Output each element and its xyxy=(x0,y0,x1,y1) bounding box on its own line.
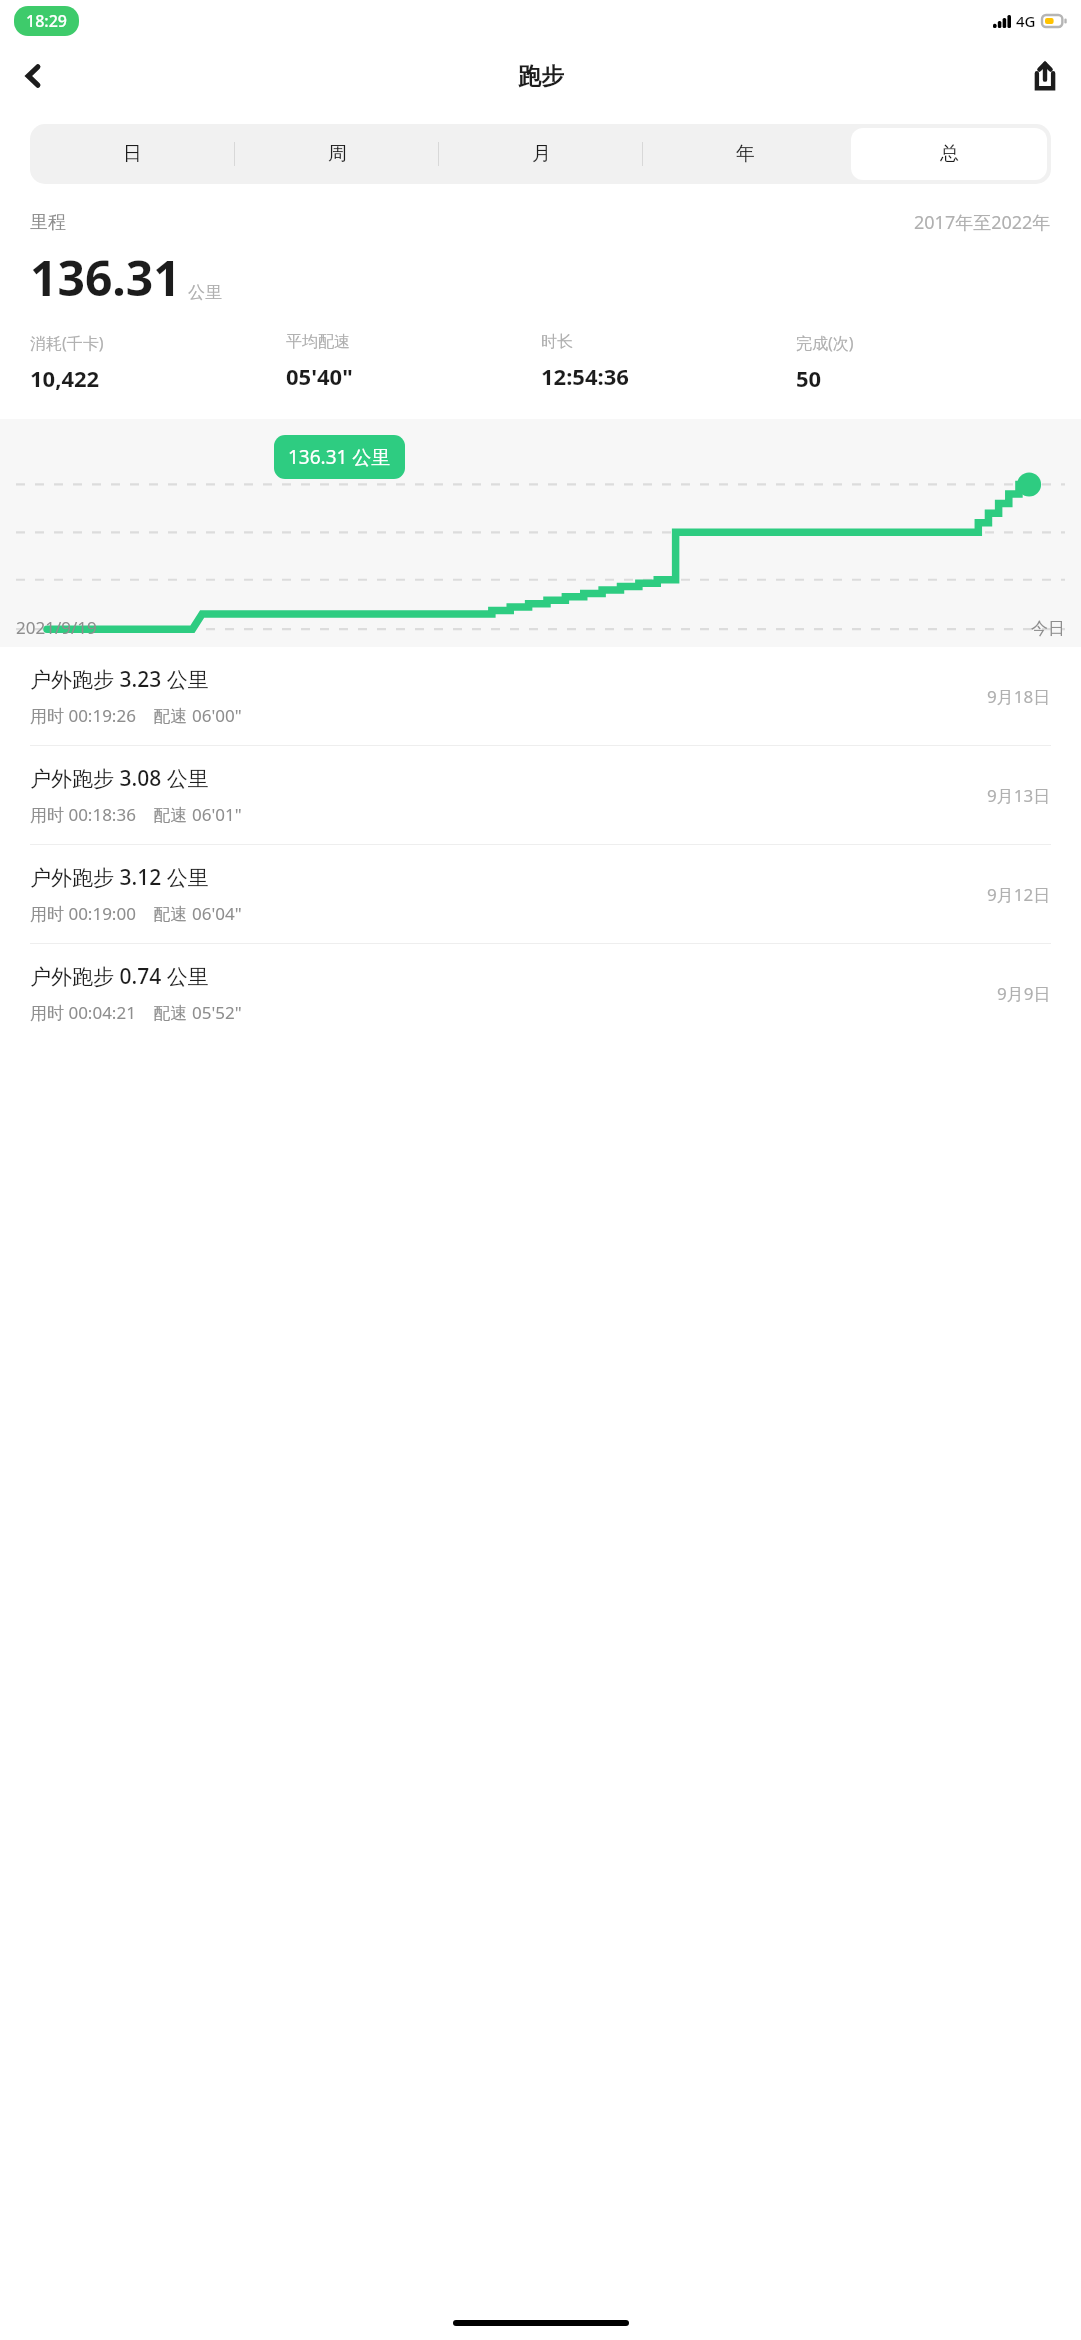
button[interactable]: 月 xyxy=(443,128,639,180)
staticText: 完成(次) xyxy=(796,332,854,354)
staticText: 9月12日 xyxy=(987,883,1051,906)
staticText: 10,422 xyxy=(30,363,100,393)
button[interactable]: Back xyxy=(8,50,60,102)
button[interactable]: 总 xyxy=(851,128,1047,180)
staticText: 4G xyxy=(1016,11,1036,31)
staticText: 公里 xyxy=(188,282,222,303)
staticText: 里程 xyxy=(30,211,66,234)
button[interactable]: 周 xyxy=(239,128,435,180)
staticText: 05'40" xyxy=(286,361,353,391)
staticText: 月 xyxy=(532,142,551,166)
staticText: 平均配速 xyxy=(286,332,350,352)
staticText: 跑步 xyxy=(518,62,564,91)
button[interactable]: 户外跑步 3.23 公里 xyxy=(0,647,1081,746)
staticText: 消耗(千卡) xyxy=(30,332,104,354)
staticText: 用时 00:19:00 配速 06'04" xyxy=(30,902,242,925)
button[interactable]: 年 xyxy=(647,128,843,180)
staticText: 年 xyxy=(736,142,755,166)
staticText: 9月9日 xyxy=(997,982,1051,1005)
staticText: 今日 xyxy=(1031,618,1065,639)
button[interactable]: 户外跑步 3.08 公里 xyxy=(0,746,1081,845)
button[interactable]: 户外跑步 0.74 公里 xyxy=(0,944,1081,1042)
staticText: 9月18日 xyxy=(987,685,1051,708)
staticText: 用时 00:19:26 配速 06'00" xyxy=(30,704,242,727)
staticText: 136.31 公里 xyxy=(288,444,391,470)
staticText: 周 xyxy=(328,142,347,166)
button[interactable]: Share xyxy=(1019,50,1071,102)
staticText: 户外跑步 3.12 公里 xyxy=(30,863,209,892)
staticText: 12:54:36 xyxy=(541,361,629,391)
staticText: 50 xyxy=(796,363,822,393)
button[interactable]: 户外跑步 3.12 公里 xyxy=(0,845,1081,944)
staticText: 户外跑步 3.08 公里 xyxy=(30,764,209,793)
staticText: 136.31 xyxy=(30,245,181,310)
staticText: 2017年至2022年 xyxy=(914,210,1051,235)
staticText: 总 xyxy=(940,142,959,166)
staticText: 9月13日 xyxy=(987,784,1051,807)
staticText: 18:29 xyxy=(26,10,67,32)
button[interactable]: 日 xyxy=(34,128,231,180)
staticText: 日 xyxy=(123,142,142,166)
staticText: 2021/9/19 xyxy=(16,616,97,639)
staticText: 时长 xyxy=(541,332,573,352)
staticText: 户外跑步 0.74 公里 xyxy=(30,962,209,991)
staticText: 户外跑步 3.23 公里 xyxy=(30,665,209,694)
staticText: 用时 00:18:36 配速 06'01" xyxy=(30,803,242,826)
staticText: 用时 00:04:21 配速 05'52" xyxy=(30,1001,242,1024)
